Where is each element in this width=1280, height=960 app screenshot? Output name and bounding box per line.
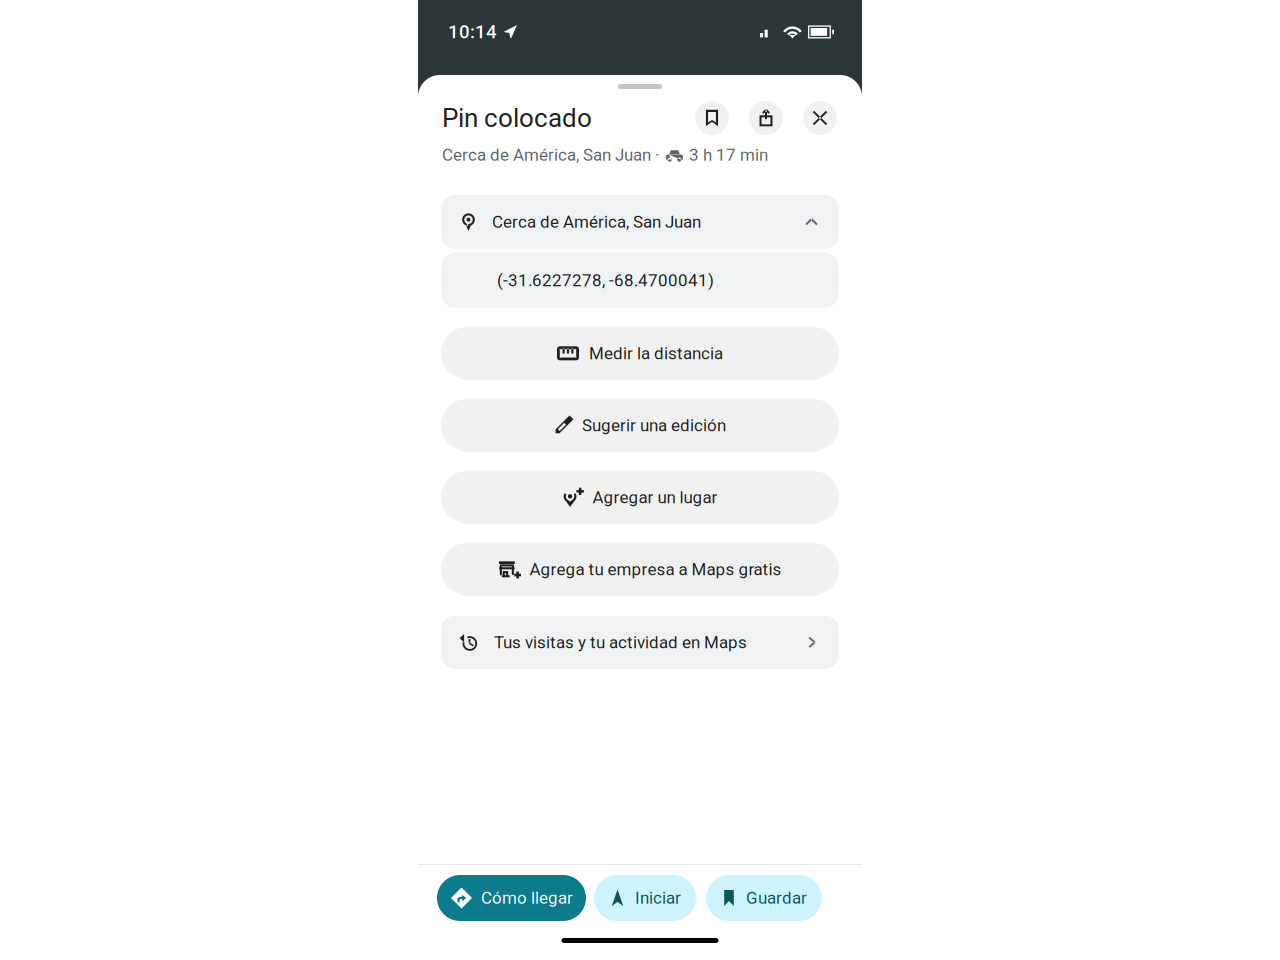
button[interactable]: Guardar: [706, 875, 822, 921]
button[interactable]: Agregar un lugar: [441, 471, 839, 524]
staticText: Cómo llegar: [481, 888, 573, 908]
staticText: (-31.6227278, -68.4700041): [497, 270, 714, 290]
staticText: Agregar un lugar: [592, 487, 717, 507]
button[interactable]: Guardar: [695, 101, 729, 135]
button[interactable]: Iniciar: [594, 875, 696, 921]
staticText: Cerca de América, San Juan: [492, 212, 701, 232]
staticText: Cerca de América, San Juan ·: [442, 145, 659, 165]
staticText: 10:14: [448, 21, 497, 43]
button[interactable]: Cómo llegar: [437, 875, 586, 921]
staticText: 3 h 17 min: [689, 145, 768, 165]
button[interactable]: Cerca de América, San Juan: [441, 195, 839, 249]
button[interactable]: Sugerir una edición: [441, 399, 839, 452]
staticText: Pin colocado: [442, 103, 592, 133]
button[interactable]: Tus visitas y tu actividad en Maps: [441, 616, 839, 669]
button[interactable]: Cerrar: [803, 101, 837, 135]
staticText: Medir la distancia: [589, 343, 723, 363]
staticText: Iniciar: [635, 888, 681, 908]
staticText: Sugerir una edición: [582, 415, 726, 435]
staticText: Tus visitas y tu actividad en Maps: [494, 632, 747, 652]
button[interactable]: Agrega tu empresa a Maps gratis: [441, 543, 839, 596]
staticText: Guardar: [746, 888, 807, 908]
button[interactable]: Medir la distancia: [441, 327, 839, 380]
staticText: Agrega tu empresa a Maps gratis: [529, 559, 781, 579]
button[interactable]: Compartir: [749, 101, 783, 135]
